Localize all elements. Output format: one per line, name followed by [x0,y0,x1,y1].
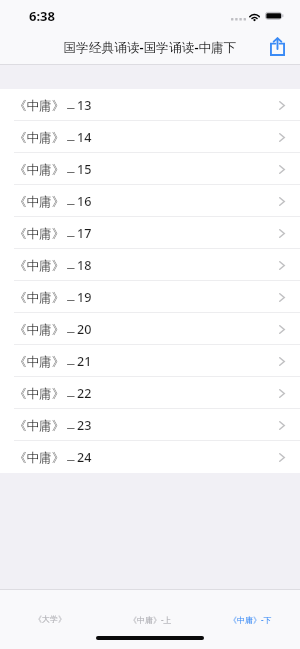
staticText: 《中庸》﹘24 [14,449,92,466]
button[interactable]: 《中庸》﹘24 [0,441,300,473]
button[interactable]: 《中庸》﹘20 [0,313,300,345]
staticText: 《中庸》﹘15 [14,161,92,178]
button[interactable]: 《中庸》﹘19 [0,281,300,313]
staticText: 《中庸》﹘21 [14,353,92,370]
staticText: 《大学》 [34,614,66,624]
button[interactable]: 《中庸》﹘17 [0,217,300,249]
button[interactable]: 《中庸》﹘16 [0,185,300,217]
button[interactable]: 《大学》 [0,590,100,636]
staticText: 《中庸》﹘23 [14,417,92,434]
button[interactable]: Share [264,32,290,61]
staticText: 《中庸》﹘20 [14,321,92,338]
button[interactable]: 《中庸》﹘15 [0,153,300,185]
button[interactable]: 《中庸》﹘23 [0,409,300,441]
staticText: 《中庸》﹘13 [14,97,92,114]
button[interactable]: 《中庸》-下 [200,590,300,636]
staticText: 《中庸》﹘17 [14,225,92,242]
staticText: 《中庸》﹘16 [14,193,92,210]
button[interactable]: 《中庸》-上 [100,590,200,636]
button[interactable]: 《中庸》﹘13 [0,89,300,121]
button[interactable]: 《中庸》﹘21 [0,345,300,377]
staticText: 《中庸》﹘22 [14,385,92,402]
button[interactable]: 《中庸》﹘14 [0,121,300,153]
staticText: 《中庸》-下 [229,614,272,625]
staticText: 《中庸》﹘14 [14,129,92,146]
button[interactable]: 《中庸》﹘18 [0,249,300,281]
staticText: 《中庸》-上 [129,614,172,625]
staticText: 《中庸》﹘18 [14,257,92,274]
staticText: 6:38 [29,7,55,25]
button[interactable]: 《中庸》﹘22 [0,377,300,409]
staticText: 国学经典诵读-国学诵读-中庸下 [63,38,237,55]
staticText: 《中庸》﹘19 [14,289,92,306]
